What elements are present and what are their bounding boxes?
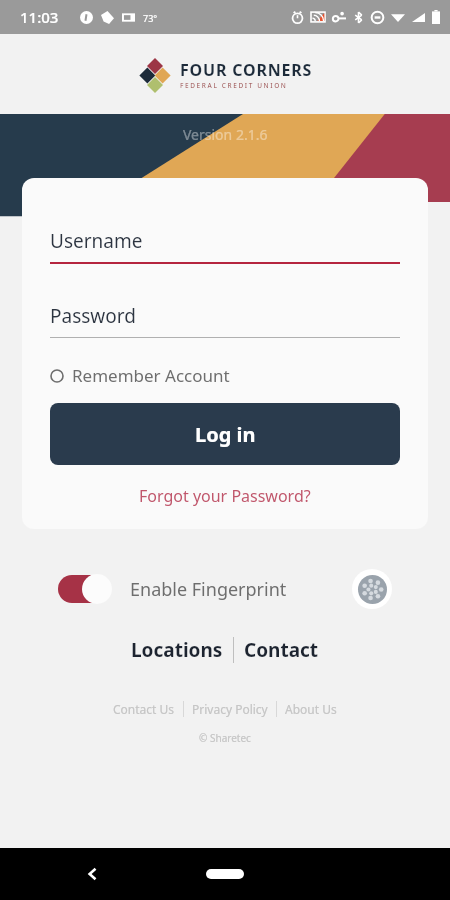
button[interactable]: Remember Account — [50, 364, 230, 387]
staticText: Password — [50, 303, 136, 329]
button[interactable]: Home — [203, 865, 247, 883]
button[interactable]: Back — [78, 859, 108, 889]
staticText: Log in — [195, 421, 256, 448]
staticText: 73° — [143, 12, 158, 24]
button[interactable]: Forgot your Password? — [50, 485, 400, 507]
staticText: © Sharetec — [0, 731, 450, 745]
button[interactable]: Privacy Policy — [184, 701, 276, 717]
staticText: FEDERAL CREDIT UNION — [180, 81, 288, 90]
staticText: Username — [50, 228, 143, 254]
staticText: Remember Account — [72, 364, 230, 387]
button[interactable]: Contact — [234, 637, 329, 663]
button[interactable]: About Us — [277, 701, 345, 717]
staticText: Enable Fingerprint — [130, 577, 287, 602]
staticText: Locations — [131, 637, 223, 663]
staticText: Forgot your Password? — [139, 485, 311, 507]
staticText: Contact — [244, 637, 319, 663]
button[interactable]: Enable Fingerprint toggle — [58, 574, 116, 604]
staticText: About Us — [285, 701, 337, 717]
button[interactable]: Log in — [50, 403, 400, 465]
staticText: 11:03 — [20, 7, 59, 27]
button[interactable]: Fingerprint — [352, 569, 392, 609]
staticText: Contact Us — [113, 701, 175, 717]
staticText: FOUR CORNERS — [180, 59, 313, 81]
button[interactable]: Locations — [121, 637, 233, 663]
staticText: Privacy Policy — [192, 701, 268, 717]
staticText: Version 2.1.6 — [183, 125, 268, 144]
button[interactable]: Contact Us — [105, 701, 183, 717]
